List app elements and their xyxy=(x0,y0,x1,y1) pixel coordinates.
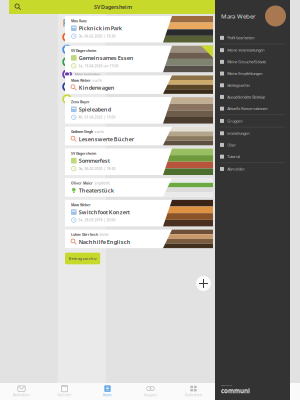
button[interactable]: Gruppen xyxy=(215,115,290,127)
staticText: Ausgeblendete Beiträge xyxy=(227,94,265,100)
button[interactable]: Gebet/Erlebnisse xyxy=(58,80,106,93)
staticText: Empfehlungen xyxy=(75,59,99,64)
staticText: Nachhilfe Englisch xyxy=(79,238,131,245)
staticText: Nachrichten xyxy=(13,393,30,397)
button[interactable]: Abmelden xyxy=(215,163,290,175)
button[interactable]: Meine Veranstaltungen xyxy=(215,44,290,56)
button[interactable]: Home xyxy=(86,381,129,400)
staticText: Zeno Bayer xyxy=(71,100,90,104)
button[interactable]: Zeno Bayer xyxy=(65,97,213,124)
staticText: Max Kunz xyxy=(71,19,87,23)
staticText: Meine Gesuche/Gebote xyxy=(227,59,266,64)
staticText: Mara Weber xyxy=(71,78,91,83)
staticText: Abmelden xyxy=(227,166,244,172)
staticText: Veranstaltungen xyxy=(75,47,101,52)
button[interactable]: Mitarbeitenden Gesu… xyxy=(58,68,106,80)
button[interactable]: Kalender xyxy=(43,381,86,400)
staticText: Home xyxy=(103,393,112,397)
staticText: Tutorial xyxy=(227,154,240,159)
button[interactable]: Gotham Singh xyxy=(65,127,213,145)
button[interactable]: Lukas Dürrbeck xyxy=(65,230,213,248)
button[interactable]: Einstellungen xyxy=(215,127,290,139)
button[interactable]: Veranstaltungen xyxy=(58,43,106,56)
button[interactable]: Beitragsarchiv xyxy=(215,79,290,91)
staticText: SV Dagersheim xyxy=(71,151,96,156)
button[interactable]: Mara Weber xyxy=(65,200,213,226)
staticText: powered by xyxy=(221,383,232,387)
staticText: Einstellungen xyxy=(227,131,249,136)
staticText: Spieleabend xyxy=(79,105,111,113)
staticText: Sommerfest xyxy=(79,157,110,164)
staticText: Beitragsarchiv xyxy=(227,83,250,88)
staticText: Gemeinsames Essen xyxy=(79,54,134,62)
staticText: sucht xyxy=(92,78,101,83)
staticText: Gebet/Erlebnisse xyxy=(75,84,103,89)
staticText: Meine Veranstaltungen xyxy=(227,48,264,53)
button[interactable]: Ausgeblendete Beiträge xyxy=(215,91,290,103)
staticText: Biete/Suche xyxy=(75,34,94,40)
staticText: Lukas Dürrbeck xyxy=(71,232,98,237)
button[interactable]: Profil bearbeiten xyxy=(215,32,290,44)
button[interactable]: Aktuelle Konversationen xyxy=(215,103,290,114)
staticText: SV Dagersheim xyxy=(71,48,96,53)
staticText: Bücherbrett xyxy=(185,393,202,397)
staticText: Über xyxy=(227,142,236,148)
staticText: Gruppen xyxy=(227,118,242,124)
button[interactable]: Über xyxy=(215,139,290,151)
staticText: Switchfoot Konzert xyxy=(79,208,130,216)
staticText: Do, 06.02.2020 | 18:30 xyxy=(78,34,115,38)
button[interactable]: SV Dagersheim xyxy=(65,46,213,72)
staticText: Beitragsarchiv xyxy=(69,256,97,261)
staticText: Mara Weber xyxy=(71,202,91,207)
button[interactable]: Search xyxy=(11,0,25,14)
button[interactable]: Oliver Maier xyxy=(65,178,213,197)
staticText: Sa, 28.03.2018 | 20:00 xyxy=(78,218,115,222)
staticText: Theaterstück xyxy=(79,187,114,194)
button[interactable]: Beitragsarchiv xyxy=(65,253,100,264)
staticText: Filter xyxy=(63,18,82,29)
button[interactable]: Meine Empfehlungen xyxy=(215,68,290,79)
button[interactable]: Bücherbrett xyxy=(172,381,215,400)
staticText: sucht xyxy=(94,129,103,134)
staticText: Kalender xyxy=(57,393,71,397)
staticText: Sa, 18.04.2020 um 19:00 xyxy=(78,64,118,68)
button[interactable]: Empfehlungen xyxy=(58,56,106,68)
button[interactable]: Gruppen xyxy=(129,381,172,400)
staticText: bietet xyxy=(99,232,108,237)
staticText: Meine Empfehlungen xyxy=(227,71,262,76)
button[interactable]: SV Dagersheim xyxy=(58,93,106,105)
staticText: Lesenswerte Bücher xyxy=(79,135,134,143)
button[interactable]: Mara Weber xyxy=(65,75,213,94)
staticText: Picknick im Park xyxy=(79,24,122,32)
staticText: Do, 06.02.2020 | 18:30 xyxy=(78,166,115,171)
staticText: SV Dagersheim xyxy=(94,3,132,11)
staticText: Kinderwagen xyxy=(79,84,115,91)
staticText: Profil bearbeiten xyxy=(227,35,254,40)
button[interactable]: Create post xyxy=(196,276,211,291)
button[interactable]: Meine Gesuche/Gebote xyxy=(215,56,290,68)
staticText: Gotham Singh xyxy=(71,129,93,134)
button[interactable]: SV Dagersheim xyxy=(65,148,213,175)
staticText: Aktuelle Konversationen xyxy=(227,106,267,111)
staticText: Mitarbeitenden Gesu… xyxy=(75,72,103,77)
button[interactable]: Tutorial xyxy=(215,151,290,162)
staticText: Mi, 01.04.2020 | 19:00 xyxy=(78,115,115,119)
button[interactable]: Nachrichten xyxy=(0,381,43,400)
staticText: empfiehlt xyxy=(94,181,109,185)
staticText: SV Dagersheim xyxy=(75,96,102,102)
staticText: Gruppen xyxy=(144,393,157,397)
staticText: communi xyxy=(221,387,250,395)
button[interactable]: Max Kunz xyxy=(65,16,213,42)
staticText: Oliver Maier xyxy=(71,181,93,185)
button[interactable]: Biete/Suche xyxy=(58,31,106,43)
staticText: Mara Weber xyxy=(221,12,256,20)
